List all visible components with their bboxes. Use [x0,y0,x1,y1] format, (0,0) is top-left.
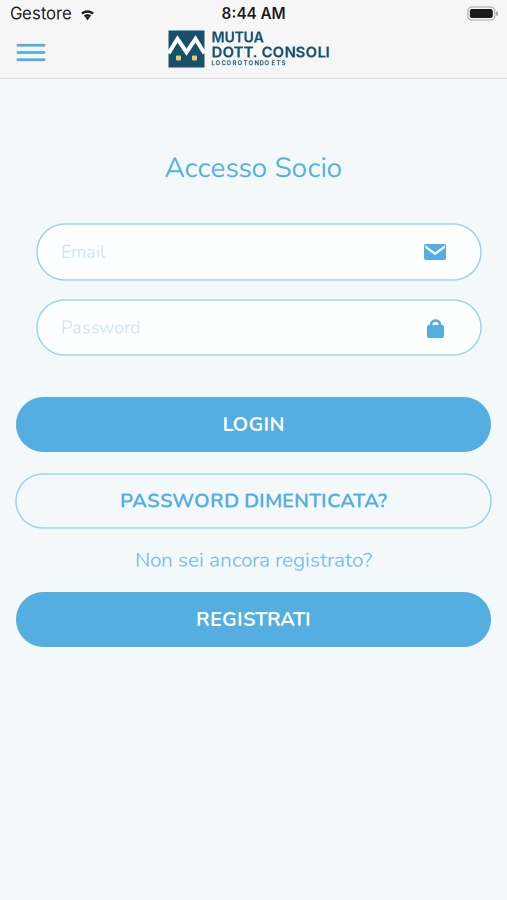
button[interactable]: LOGIN [16,397,491,452]
staticText: MUTUA [211,29,263,46]
staticText: 8:44 AM [221,4,285,23]
staticText: REGISTRATI [196,606,311,633]
staticText: DOTT. CONSOLI [211,43,329,61]
staticText: PASSWORD DIMENTICATA? [120,487,387,515]
staticText: Gestore [10,3,72,24]
button[interactable]: Non sei ancora registrato? [135,548,372,572]
staticText: Accesso Socio [164,149,342,187]
staticText: LOGIN [222,411,284,438]
staticText: L O C O R O T O N D O E T S [211,59,285,67]
staticText: Non sei ancora registrato? [135,546,372,574]
button[interactable]: REGISTRATI [16,592,491,647]
button[interactable]: PASSWORD DIMENTICATA? [16,474,491,528]
staticText: Password [61,315,140,340]
staticText: Email [61,240,105,264]
button[interactable]: Menu [8,29,54,75]
